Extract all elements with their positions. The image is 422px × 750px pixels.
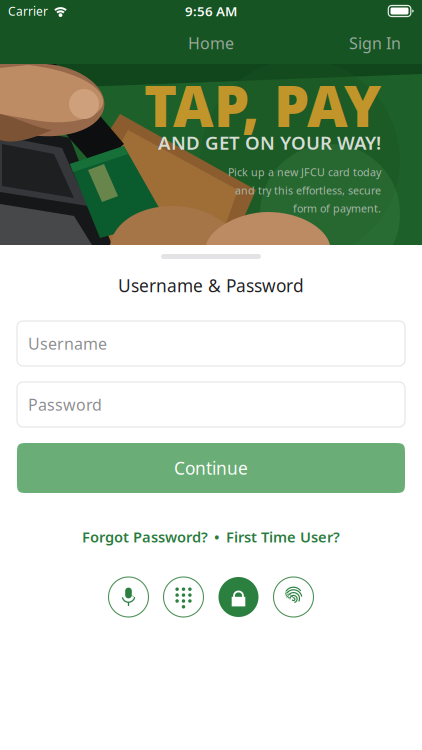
button[interactable]: Touch ID	[266, 572, 321, 621]
button[interactable]: PIN keypad	[156, 572, 211, 621]
staticText: Continue	[174, 456, 248, 479]
button[interactable]: Voice sign in	[101, 572, 156, 621]
button[interactable]: Sign In	[341, 25, 409, 61]
staticText: AND GET ON YOUR WAY!	[158, 130, 381, 155]
staticText: Home	[188, 32, 234, 54]
button[interactable]: Password	[0, 382, 422, 427]
button[interactable]: Username	[0, 321, 422, 366]
staticText: 9:56 AM	[185, 2, 237, 20]
button[interactable]: Secure sign in	[211, 572, 266, 621]
staticText: First Time User?	[226, 527, 340, 546]
staticText: Username & Password	[118, 274, 304, 297]
button[interactable]: Home	[178, 25, 244, 61]
staticText: Pick up a new JFCU card today	[228, 165, 381, 179]
button[interactable]: Forgot Password?	[82, 523, 208, 550]
staticText: Forgot Password?	[82, 527, 208, 546]
staticText: •	[214, 527, 220, 546]
button[interactable]: First Time User?	[226, 523, 340, 550]
staticText: Carrier	[8, 3, 48, 19]
staticText: and try this effortless, secure	[235, 183, 381, 197]
staticText: Password	[28, 394, 102, 415]
staticText: Sign In	[349, 32, 401, 54]
staticText: form of payment.	[293, 201, 381, 215]
staticText: Username	[28, 333, 107, 354]
button[interactable]: Continue	[0, 443, 422, 493]
staticText: TAP, PAY	[144, 68, 381, 142]
